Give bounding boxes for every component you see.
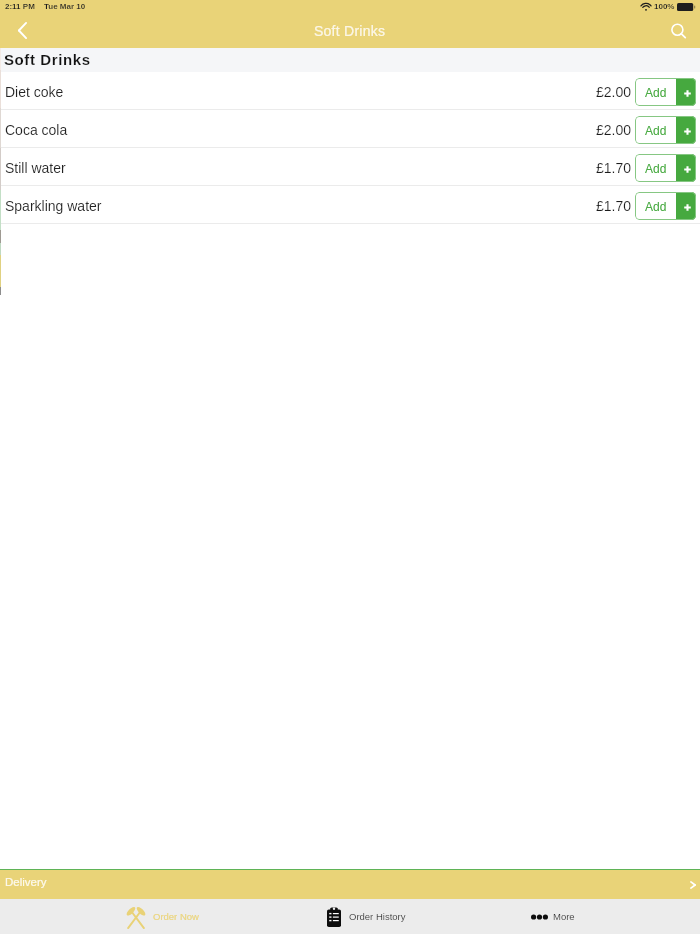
staticText: Add	[645, 124, 667, 137]
button[interactable]: Still water	[0, 148, 700, 186]
button[interactable]: Search	[656, 19, 700, 48]
button[interactable]: Add one	[676, 154, 696, 182]
button[interactable]: Order Now	[124, 899, 199, 934]
button[interactable]: More	[531, 899, 575, 934]
staticText: £2.00	[596, 84, 632, 100]
staticText: Order History	[349, 911, 406, 922]
button[interactable]: Diet coke	[0, 72, 700, 110]
staticText: £1.70	[596, 160, 632, 176]
button[interactable]: Add one	[676, 192, 696, 220]
staticText: £2.00	[596, 122, 632, 138]
staticText: Still water	[5, 160, 66, 176]
button[interactable]: Order History	[327, 899, 406, 934]
button[interactable]: Delivery	[0, 870, 700, 899]
staticText: Add	[645, 86, 667, 99]
button[interactable]: Add	[635, 192, 676, 220]
staticText: More	[553, 911, 575, 922]
staticText: Sparkling water	[5, 198, 102, 214]
button[interactable]: Add one	[676, 116, 696, 144]
button[interactable]: Coca cola	[0, 110, 700, 148]
staticText: Add	[645, 200, 667, 213]
staticText: Soft Drinks	[314, 23, 386, 39]
button[interactable]: Back	[0, 19, 44, 48]
staticText: Delivery	[5, 876, 47, 889]
staticText: Tue Mar 10	[44, 2, 86, 11]
button[interactable]: Add	[635, 116, 676, 144]
staticText: Order Now	[153, 911, 199, 922]
button[interactable]: Sparkling water	[0, 186, 700, 224]
button[interactable]: Add	[635, 154, 676, 182]
staticText: Diet coke	[5, 84, 64, 100]
staticText: Soft Drinks	[4, 51, 91, 68]
staticText: £1.70	[596, 198, 632, 214]
staticText: Add	[645, 162, 667, 175]
staticText: Coca cola	[5, 122, 68, 138]
button[interactable]: Add one	[676, 78, 696, 106]
staticText: 100%	[654, 2, 675, 11]
button[interactable]: Add	[635, 78, 676, 106]
staticText: 2:11 PM	[5, 2, 35, 11]
